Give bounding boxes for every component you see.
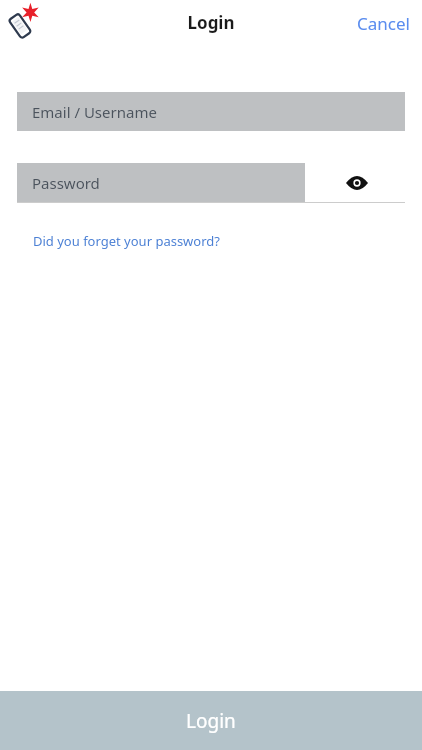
button[interactable]: Login <box>0 691 422 750</box>
staticText: Email / Username <box>32 102 157 122</box>
button[interactable]: Cancel <box>345 4 422 43</box>
staticText: Login <box>186 708 236 734</box>
staticText: Login <box>187 11 235 34</box>
staticText: Cancel <box>357 12 410 35</box>
button[interactable]: App logo <box>4 2 44 42</box>
button[interactable]: Email / Username <box>17 92 405 131</box>
button[interactable]: Show password <box>333 163 381 202</box>
button[interactable]: Did you forget your password? <box>17 226 236 256</box>
staticText: Did you forget your password? <box>33 232 220 250</box>
staticText: Password <box>32 173 100 193</box>
button[interactable]: Password <box>17 163 305 202</box>
